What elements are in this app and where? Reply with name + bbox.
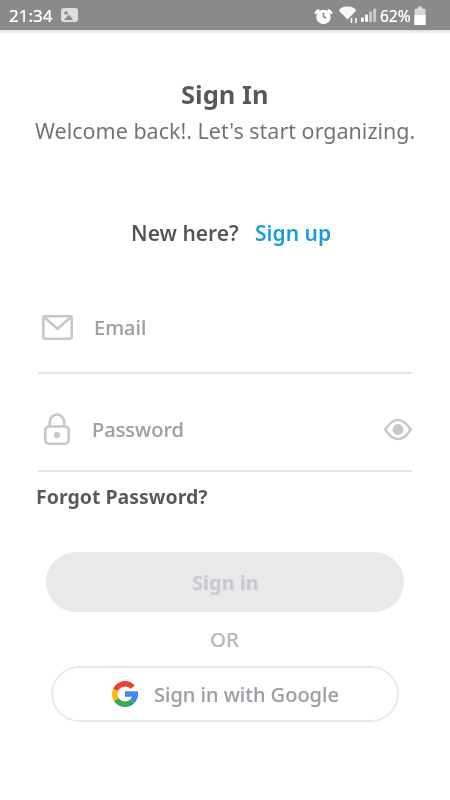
staticText: Email (94, 314, 147, 341)
button[interactable]: Password (0, 404, 450, 454)
button[interactable]: Sign up (255, 219, 332, 248)
staticText: OR (210, 625, 240, 653)
button[interactable]: Sign in (46, 552, 404, 612)
staticText: Sign in (192, 569, 259, 596)
staticText: Sign in with Google (154, 681, 339, 708)
staticText: Welcome back!. Let's start organizing. (35, 116, 416, 144)
button[interactable]: Sign in with Google (51, 666, 399, 722)
staticText: Sign up (255, 219, 332, 248)
staticText: Sign In (181, 77, 269, 112)
staticText: Password (92, 416, 184, 443)
button[interactable]: Email (0, 302, 450, 352)
button[interactable]: Forgot Password? (36, 483, 208, 510)
staticText: New here? (131, 219, 239, 248)
staticText: Forgot Password? (36, 483, 208, 510)
staticText: 21:34 (9, 4, 53, 27)
staticText: 62% (380, 5, 411, 26)
